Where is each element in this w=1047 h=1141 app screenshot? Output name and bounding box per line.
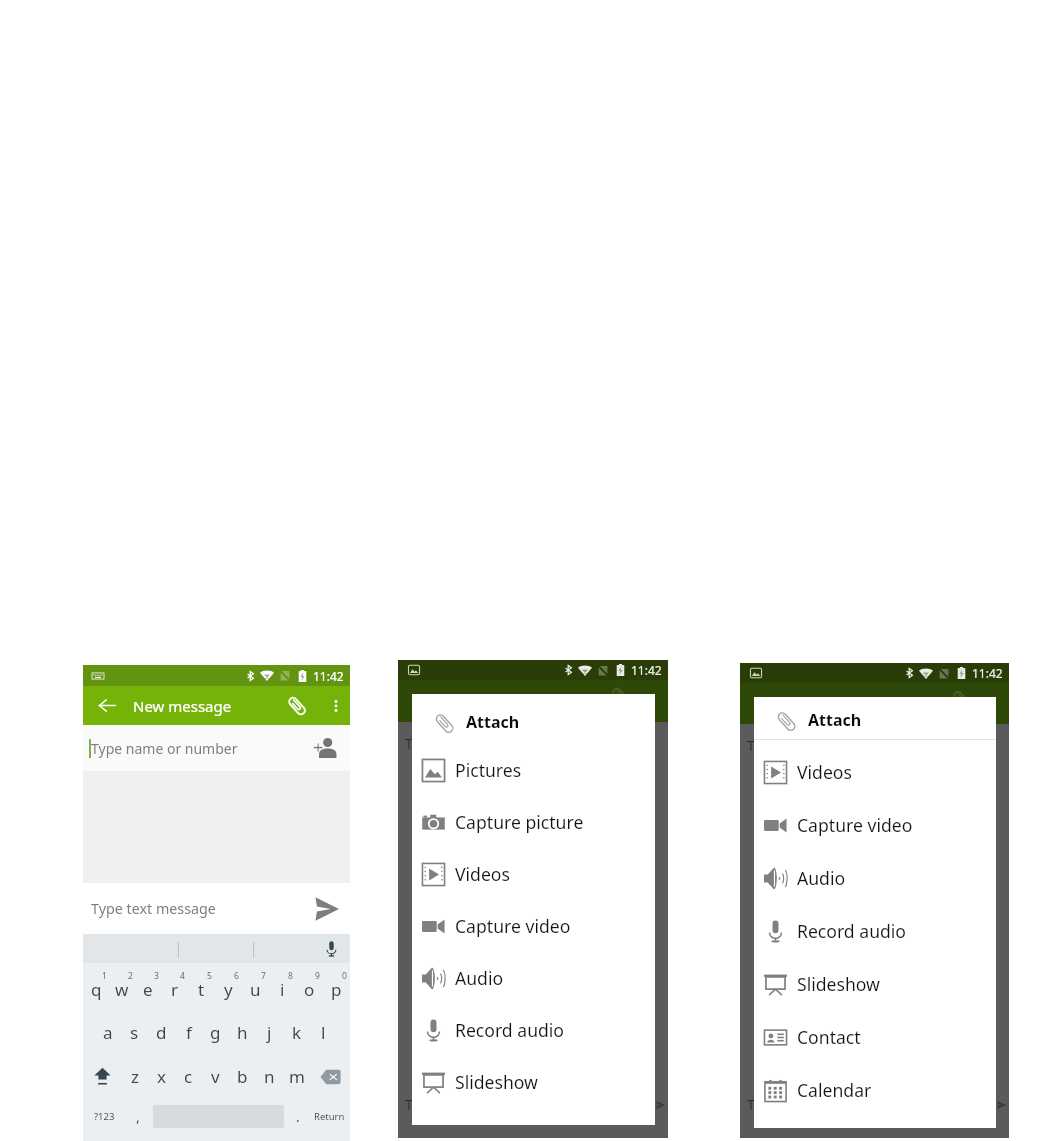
button[interactable]: 7 — [242, 963, 269, 1010]
staticText: 9 — [315, 970, 320, 982]
button[interactable]: Type name or number — [83, 725, 350, 771]
button[interactable]: Contact — [754, 1010, 996, 1063]
staticText: 8 — [288, 970, 293, 982]
button[interactable]: Pictures — [412, 744, 655, 796]
button[interactable]: c — [175, 1055, 202, 1098]
button[interactable]: 8 — [269, 963, 296, 1010]
button[interactable]: Type text message — [83, 883, 350, 934]
staticText: , — [136, 1107, 140, 1126]
staticText: Capture video — [797, 813, 913, 837]
staticText: Attach — [466, 711, 520, 733]
button[interactable]: Slideshow — [412, 1056, 655, 1108]
button[interactable]: 5 — [188, 963, 215, 1010]
button[interactable]: f — [175, 1010, 202, 1055]
staticText: n — [264, 1065, 275, 1088]
staticText: a — [103, 1021, 113, 1044]
button[interactable]: d — [148, 1010, 175, 1055]
staticText: m — [289, 1065, 305, 1088]
staticText: Return — [314, 1110, 345, 1123]
button[interactable]: s — [121, 1010, 148, 1055]
staticText: d — [156, 1021, 167, 1044]
staticText: T — [747, 1095, 755, 1114]
button[interactable]: g — [202, 1010, 229, 1055]
button[interactable]: v — [202, 1055, 229, 1098]
button[interactable]: Videos — [412, 848, 655, 900]
button[interactable]: Videos — [754, 745, 996, 798]
staticText: Audio — [797, 866, 846, 890]
staticText: f — [186, 1021, 192, 1044]
staticText: i — [280, 978, 285, 1001]
button[interactable]: Back — [92, 686, 122, 725]
button[interactable]: Return — [308, 1095, 350, 1138]
staticText: b — [237, 1065, 248, 1088]
button[interactable]: l — [310, 1010, 337, 1055]
button[interactable]: z — [122, 1055, 148, 1098]
staticText: Record audio — [455, 1018, 565, 1042]
staticText: ?123 — [94, 1110, 115, 1123]
staticText: Capture video — [455, 914, 571, 938]
button[interactable]: Slideshow — [754, 957, 996, 1010]
button[interactable]: Send — [309, 891, 345, 927]
staticText: 5 — [207, 970, 212, 982]
button[interactable]: 2 — [109, 963, 135, 1010]
button[interactable]: Record audio — [412, 1004, 655, 1056]
staticText: 0 — [342, 970, 347, 982]
button[interactable]: Audio — [754, 851, 996, 904]
button[interactable]: Record audio — [754, 904, 996, 957]
staticText: . — [296, 1107, 300, 1126]
staticText: New message — [133, 696, 232, 716]
staticText: 4 — [180, 970, 185, 982]
staticText: 7 — [261, 970, 266, 982]
staticText: h — [237, 1021, 248, 1044]
button[interactable]: n — [256, 1055, 283, 1098]
staticText: Capture picture — [455, 810, 584, 834]
staticText: 2 — [128, 970, 133, 982]
staticText: u — [250, 978, 261, 1001]
staticText: k — [292, 1021, 302, 1044]
staticText: Slideshow — [797, 972, 880, 996]
button[interactable]: m — [283, 1055, 310, 1098]
button[interactable]: Capture video — [412, 900, 655, 952]
button[interactable]: h — [229, 1010, 256, 1055]
staticText: r — [171, 978, 179, 1001]
staticText: Audio — [455, 966, 504, 990]
button[interactable]: 1 — [83, 963, 109, 1010]
button[interactable]: Calendar — [754, 1063, 996, 1116]
button[interactable]: , — [125, 1095, 150, 1138]
button[interactable]: Capture video — [754, 798, 996, 851]
staticText: Videos — [455, 862, 510, 886]
button[interactable]: ?123 — [83, 1095, 125, 1138]
staticText: l — [321, 1021, 326, 1044]
button[interactable]: 3 — [135, 963, 161, 1010]
button[interactable]: k — [283, 1010, 310, 1055]
staticText: o — [304, 978, 315, 1001]
button[interactable]: 4 — [161, 963, 188, 1010]
button[interactable]: 0 — [323, 963, 350, 1010]
button[interactable]: x — [148, 1055, 175, 1098]
button[interactable]: . — [287, 1095, 308, 1138]
button[interactable]: b — [229, 1055, 256, 1098]
staticText: g — [210, 1021, 221, 1044]
button[interactable]: Audio — [412, 952, 655, 1004]
staticText: Contact — [797, 1025, 861, 1049]
staticText: e — [143, 978, 153, 1001]
button[interactable]: More options — [322, 686, 350, 725]
button[interactable]: 6 — [215, 963, 242, 1010]
staticText: Type name or number — [91, 739, 238, 758]
button[interactable]: a — [95, 1010, 121, 1055]
button[interactable]: Attach — [280, 686, 314, 725]
staticText: c — [184, 1065, 193, 1088]
button[interactable]: Shift — [83, 1055, 122, 1098]
staticText: 11:42 — [972, 665, 1003, 681]
button[interactable]: Capture picture — [412, 796, 655, 848]
button[interactable]: Voice input — [318, 936, 344, 962]
staticText: 1 — [102, 970, 107, 982]
staticText: v — [211, 1065, 220, 1088]
staticText: x — [157, 1065, 166, 1088]
button[interactable]: Backspace — [310, 1055, 350, 1098]
button[interactable]: j — [256, 1010, 283, 1055]
button[interactable]: 9 — [296, 963, 323, 1010]
button[interactable]: Add contact — [308, 733, 338, 763]
staticText: p — [331, 978, 342, 1001]
